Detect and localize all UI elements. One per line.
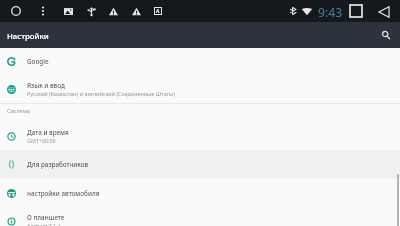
button[interactable]: Recents	[346, 1, 366, 21]
staticText: Настройки	[7, 31, 49, 42]
button[interactable]: Home	[5, 0, 27, 22]
button[interactable]: Back	[374, 2, 394, 22]
staticText: A	[156, 8, 160, 15]
button[interactable]: Язык и ввод	[0, 75, 400, 103]
staticText: Google	[27, 57, 49, 66]
staticText: Язык и ввод	[27, 81, 65, 90]
button[interactable]: Search	[377, 26, 395, 44]
button[interactable]: More options	[34, 2, 52, 20]
staticText: Русский (Казахстан) и английский (Соедин…	[27, 90, 175, 97]
staticText: Дата и время	[27, 128, 69, 137]
button[interactable]: настройки автомобиля	[0, 179, 400, 207]
staticText: настройки автомобиля	[27, 189, 100, 198]
staticText: Система	[7, 107, 30, 115]
staticText: 9:43	[318, 4, 343, 21]
staticText: О планшете	[27, 213, 65, 222]
staticText: Android 7.1.1	[27, 222, 61, 226]
button[interactable]: Для разработчиков	[0, 150, 400, 179]
button[interactable]: Google	[0, 48, 400, 75]
staticText: Для разработчиков	[27, 160, 89, 169]
button[interactable]: Дата и время	[0, 122, 400, 150]
staticText: GMT+00:00	[27, 137, 56, 144]
button[interactable]: О планшете	[0, 207, 400, 226]
